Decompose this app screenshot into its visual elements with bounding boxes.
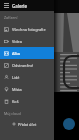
- button[interactable]: Odstraněné: [0, 59, 54, 71]
- staticText: Místa: [12, 87, 22, 92]
- button[interactable]: Všechna fotografie: [0, 23, 54, 35]
- staticText: Zařízení: [4, 15, 18, 20]
- button[interactable]: Místa: [0, 83, 54, 95]
- staticText: Alba: [12, 51, 20, 56]
- staticText: Koš: [12, 99, 19, 104]
- button[interactable]: Videa: [0, 35, 54, 47]
- button[interactable]: Add photo: [63, 118, 75, 130]
- staticText: Odstraněné: [12, 63, 34, 68]
- button[interactable]: Koš: [0, 95, 54, 107]
- staticText: Přidat účet: [18, 122, 37, 127]
- staticText: Videa: [12, 39, 22, 44]
- button[interactable]: Alba: [0, 47, 54, 59]
- button[interactable]: Přidat účet: [0, 119, 54, 129]
- staticText: Lidé: [12, 75, 20, 80]
- staticText: Všechna fotografie: [12, 27, 46, 32]
- button[interactable]: Lidé: [0, 71, 54, 83]
- staticText: Můj cloud: [4, 111, 21, 116]
- staticText: Galerie: [12, 3, 27, 9]
- button[interactable]: Open navigation menu: [0, 0, 12, 11]
